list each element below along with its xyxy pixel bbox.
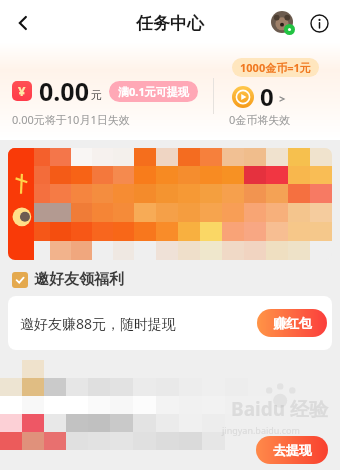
- staticText: 0.00元将于10月1日失效: [12, 112, 130, 127]
- button[interactable]: 去提现: [256, 436, 328, 464]
- staticText: 去提现: [273, 442, 312, 458]
- staticText: 赚红包: [273, 315, 312, 331]
- staticText: 0: [260, 80, 274, 113]
- staticText: 0.00: [39, 74, 89, 108]
- button[interactable]: Back: [4, 4, 42, 42]
- staticText: ¥: [18, 82, 26, 100]
- staticText: 0金币将失效: [229, 112, 291, 127]
- button[interactable]: 0: [232, 80, 286, 113]
- staticText: 邀好友赚88元，随时提现: [20, 314, 177, 333]
- button[interactable]: 邀好友赚88元，随时提现: [8, 296, 332, 350]
- button[interactable]: 赚红包: [257, 309, 327, 337]
- staticText: 元: [91, 88, 102, 102]
- staticText: 满0.1元可提现: [118, 84, 189, 99]
- button[interactable]: [8, 148, 332, 260]
- staticText: jingyan.baidu.com: [222, 424, 300, 436]
- staticText: Baidu 经验: [231, 396, 328, 422]
- staticText: 1000金币=1元: [240, 60, 311, 75]
- button[interactable]: Profile: [271, 11, 295, 35]
- button[interactable]: 满0.1元可提现: [109, 81, 198, 102]
- staticText: 任务中心: [136, 13, 204, 34]
- staticText: 邀好友领福利: [34, 270, 124, 289]
- button[interactable]: Info: [306, 10, 332, 36]
